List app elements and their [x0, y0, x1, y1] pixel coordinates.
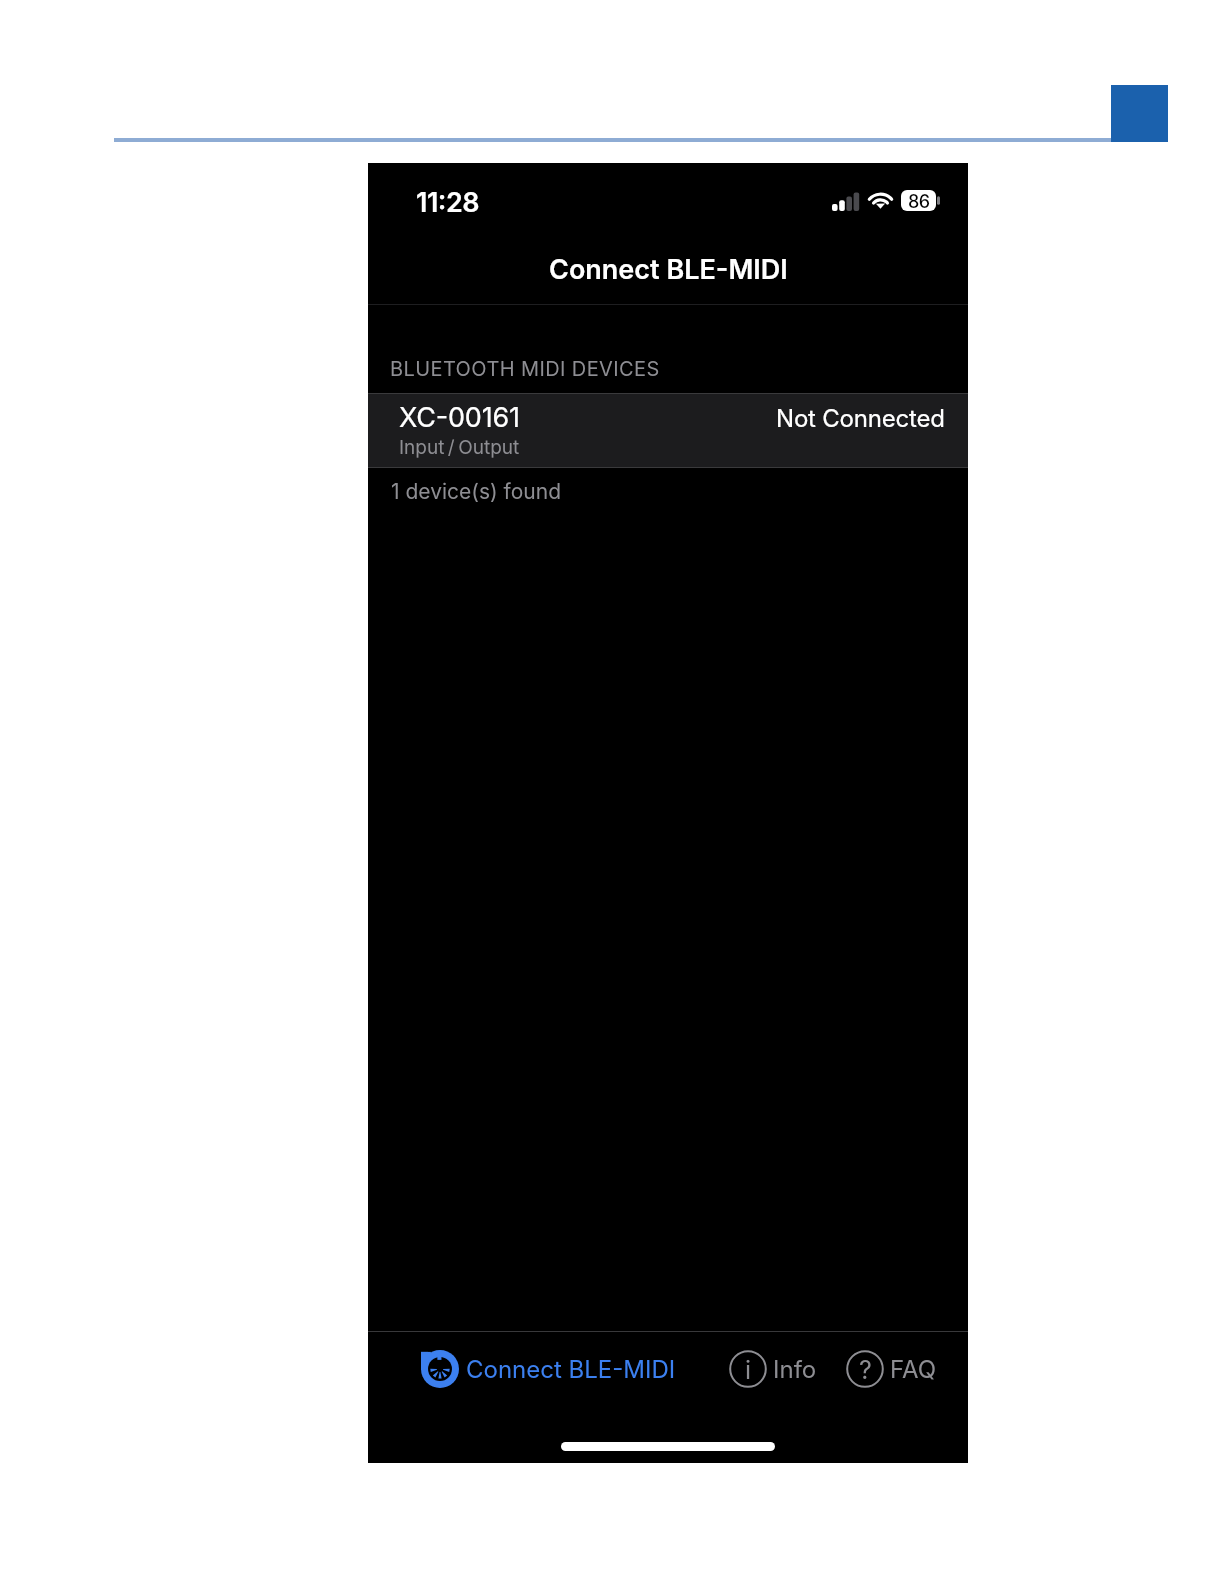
button[interactable]: XC-00161 — [368, 394, 968, 467]
button[interactable]: Connect BLE-MIDI — [409, 1333, 688, 1405]
button[interactable]: ? — [834, 1333, 949, 1405]
staticText: Info — [773, 1355, 817, 1384]
staticText: ? — [859, 1355, 872, 1385]
button[interactable]: i — [717, 1333, 829, 1405]
staticText: 1 device(s) found — [391, 479, 562, 504]
other: Connect BLE-MIDI — [421, 1350, 459, 1388]
staticText: Connect BLE-MIDI — [549, 253, 788, 286]
staticText: Input / Output — [399, 436, 520, 459]
staticText: 11:28 — [416, 186, 480, 219]
staticText: i — [745, 1355, 752, 1385]
staticText: Not Connected — [776, 404, 945, 433]
staticText: 86 — [908, 191, 930, 212]
staticText: Connect BLE-MIDI — [466, 1355, 676, 1384]
staticText: FAQ — [890, 1355, 937, 1384]
staticText: XC-00161 — [399, 401, 520, 434]
staticText: BLUETOOTH MIDI DEVICES — [390, 357, 660, 381]
